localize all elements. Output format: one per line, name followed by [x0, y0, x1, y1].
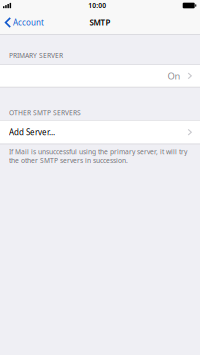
staticText: OTHER SMTP SERVERS [9, 108, 81, 117]
staticText: SMTP [89, 17, 110, 28]
button[interactable]: Add Server... [0, 121, 200, 144]
staticText: Add Server... [9, 127, 55, 137]
staticText: Account [13, 17, 44, 28]
staticText: On [168, 70, 181, 82]
button[interactable]: Primary Server, On [0, 65, 200, 87]
button[interactable]: Account [0, 11, 49, 34]
staticText: 10:00 [88, 1, 106, 10]
staticText: PRIMARY SERVER [9, 51, 63, 60]
staticText: If Mail is unsuccessful using the primar… [9, 147, 187, 165]
